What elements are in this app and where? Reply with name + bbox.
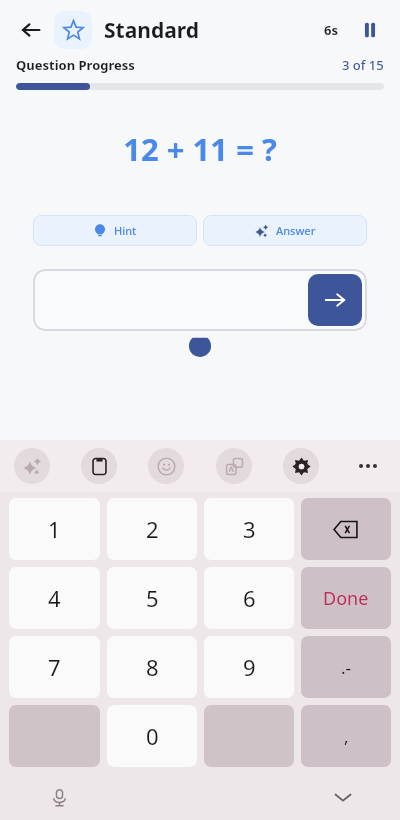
button[interactable]: , [301,705,391,767]
button[interactable]: 8 [107,636,197,698]
staticText: 3 [243,514,256,544]
staticText: 9 [243,652,256,682]
button[interactable]: Favorite [54,11,92,49]
button[interactable]: Pause [354,14,386,46]
button[interactable]: 2 [107,498,197,560]
staticText: Hint [114,223,137,238]
button[interactable]: Assist [14,448,50,484]
button[interactable]: 5 [107,567,197,629]
button[interactable]: Done [301,567,391,629]
button[interactable]: .- [301,636,391,698]
staticText: 12 + 11 = ? [0,128,400,170]
button[interactable]: Backspace [301,498,391,560]
button[interactable] [33,269,367,331]
staticText: 2 [146,514,159,544]
staticText: 6 [243,583,256,613]
button[interactable]: 7 [9,636,100,698]
button[interactable]: Submit [308,274,362,326]
staticText: Answer [276,223,316,238]
staticText: .- [341,656,352,679]
staticText: 6s [324,21,338,39]
staticText: Done [323,586,369,611]
button[interactable]: More options [350,448,386,484]
button[interactable]: 1 [9,498,100,560]
staticText: 8 [146,652,159,682]
staticText: 1 [48,514,61,544]
button[interactable]: Settings [283,448,319,484]
staticText: Question Progress [16,56,135,74]
button[interactable]: 6 [204,567,294,629]
button[interactable]: 3 [204,498,294,560]
button[interactable]: Voice input [42,780,76,814]
staticText: 0 [146,721,159,751]
staticText: , [344,725,349,748]
staticText: 3 of 15 [342,56,384,74]
button[interactable]: 4 [9,567,100,629]
button[interactable]: Emoji [148,448,184,484]
staticText: 4 [48,583,61,613]
button[interactable]: 9 [204,636,294,698]
button[interactable]: 0 [107,705,197,767]
button[interactable]: Translate [216,448,252,484]
staticText: Standard [104,16,200,45]
button[interactable]: Back [14,13,48,47]
staticText: 5 [146,583,159,613]
button[interactable]: Clipboard [81,448,117,484]
button[interactable]: Hint [33,215,197,246]
staticText: 7 [48,652,61,682]
button[interactable]: Hide keyboard [326,780,360,814]
button[interactable]: Answer [203,215,367,246]
